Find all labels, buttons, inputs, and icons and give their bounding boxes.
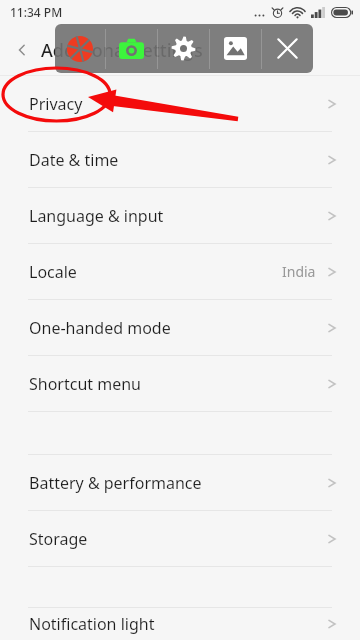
staticText: One-handed mode	[29, 317, 171, 339]
button[interactable]: Screenshot	[106, 24, 157, 73]
staticText: Notification light	[29, 613, 155, 635]
button[interactable]: Start recording	[55, 24, 105, 73]
staticText: Shortcut menu	[29, 373, 142, 395]
staticText: India	[282, 262, 316, 281]
staticText: Battery & performance	[29, 472, 202, 494]
button[interactable]: Storage	[0, 511, 360, 566]
button[interactable]: Back	[0, 28, 44, 72]
button[interactable]: One-handed mode	[0, 300, 360, 355]
staticText: Storage	[29, 528, 88, 550]
staticText: Language & input	[29, 205, 164, 227]
staticText: Locale	[29, 261, 77, 283]
staticText: Additional settings	[41, 38, 203, 63]
staticText: Date & time	[29, 149, 119, 171]
button[interactable]: Notification light	[0, 608, 360, 640]
button[interactable]: Close	[262, 24, 313, 73]
button[interactable]: Locale	[0, 244, 360, 299]
button[interactable]: Gallery	[210, 24, 261, 73]
button[interactable]: Date & time	[0, 132, 360, 187]
button[interactable]: Privacy	[0, 76, 360, 131]
button[interactable]: Battery & performance	[0, 455, 360, 510]
staticText: Privacy	[29, 93, 83, 115]
staticText: 11:34 PM	[10, 4, 63, 20]
button[interactable]: Recorder settings	[158, 24, 209, 73]
button[interactable]: Language & input	[0, 188, 360, 243]
button[interactable]: Shortcut menu	[0, 356, 360, 411]
